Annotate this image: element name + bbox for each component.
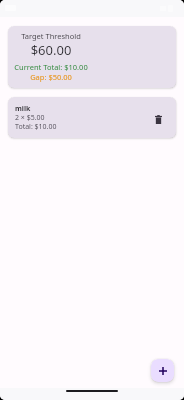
staticText: Gap: $50.00 [13,72,89,82]
button[interactable]: milk [8,97,176,138]
button[interactable]: Delete [150,111,166,127]
button[interactable]: Target Threshold [8,26,176,88]
staticText: milk [15,104,31,114]
staticText: Total: $10.00 [15,122,57,132]
staticText: Target Threshold [13,31,89,41]
staticText: Current Total: $10.00 [13,62,89,72]
button[interactable]: Add item [151,359,174,382]
staticText: $60.00 [13,41,89,59]
staticText: 2 × $5.00 [15,113,45,123]
